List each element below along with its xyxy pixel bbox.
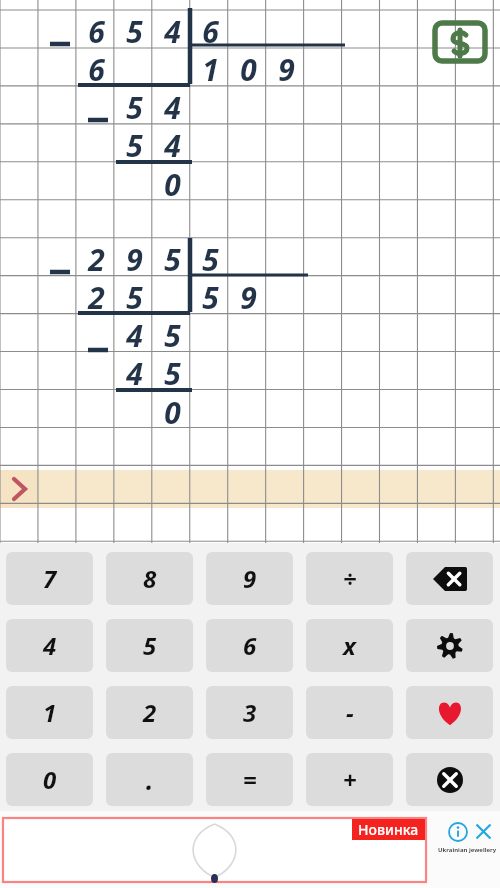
button[interactable]: 3 (206, 686, 293, 739)
button[interactable]: = (206, 753, 293, 806)
staticText: 9 (240, 277, 257, 318)
button[interactable]: + (306, 753, 393, 806)
button[interactable]: Ad info (448, 822, 468, 842)
staticText: . (146, 762, 154, 797)
staticText: 1 (202, 49, 219, 90)
staticText: 5 (126, 87, 143, 128)
staticText: 6 (88, 49, 105, 90)
staticText: 2 (143, 696, 157, 729)
staticText: 0 (240, 49, 257, 90)
button[interactable]: 7 (6, 552, 93, 605)
staticText: 3 (243, 696, 257, 729)
button[interactable]: Backspace (406, 552, 493, 605)
button[interactable]: 6 (206, 619, 293, 672)
staticText: 5 (202, 239, 219, 280)
button[interactable]: Clear (406, 753, 493, 806)
staticText: 0 (164, 392, 181, 433)
staticText: 2 (88, 277, 105, 318)
button[interactable]: 1 (6, 686, 93, 739)
staticText: 5 (164, 315, 181, 356)
staticText: 9 (243, 562, 257, 595)
button[interactable]: 9 (206, 552, 293, 605)
staticText: = (243, 763, 257, 796)
button[interactable]: − (306, 686, 393, 739)
button[interactable]: 2 (106, 686, 193, 739)
button[interactable]: Close ad (473, 821, 494, 842)
staticText: ÷ (343, 562, 357, 595)
button[interactable]: 0 (6, 753, 93, 806)
staticText: 0 (164, 164, 181, 205)
button[interactable]: 4 (6, 619, 93, 672)
button[interactable]: Remove ads (432, 18, 488, 66)
staticText: 5 (164, 353, 181, 394)
staticText: 4 (126, 353, 143, 394)
staticText: 5 (143, 629, 157, 662)
staticText: 5 (126, 125, 143, 166)
staticText: 9 (126, 239, 143, 280)
staticText: 4 (43, 629, 57, 662)
staticText: 4 (164, 87, 181, 128)
button[interactable]: Favorite (406, 686, 493, 739)
button[interactable]: ÷ (306, 552, 393, 605)
staticText: 8 (143, 562, 157, 595)
staticText: Ukrainian jewellery (438, 846, 497, 854)
button[interactable]: 8 (106, 552, 193, 605)
staticText: 6 (88, 11, 105, 52)
button[interactable]: x (306, 619, 393, 672)
staticText: Новинка (358, 820, 419, 839)
button[interactable]: Новинка (3, 818, 426, 882)
staticText: 5 (126, 277, 143, 318)
staticText: 5 (164, 239, 181, 280)
button[interactable]: 5 (106, 619, 193, 672)
staticText: 6 (243, 629, 257, 662)
staticText: 4 (164, 125, 181, 166)
staticText: 4 (126, 315, 143, 356)
staticText: 7 (43, 562, 57, 595)
staticText: + (343, 763, 357, 796)
staticText: 5 (202, 277, 219, 318)
staticText: 0 (43, 763, 57, 796)
staticText: 9 (278, 49, 295, 90)
button[interactable]: . (106, 753, 193, 806)
staticText: 4 (164, 11, 181, 52)
button[interactable]: Settings (406, 619, 493, 672)
staticText: 1 (43, 696, 57, 729)
staticText: 2 (88, 239, 105, 280)
staticText: x (343, 629, 356, 662)
staticText: − (346, 696, 354, 729)
staticText: 5 (126, 11, 143, 52)
staticText: 6 (202, 11, 219, 52)
